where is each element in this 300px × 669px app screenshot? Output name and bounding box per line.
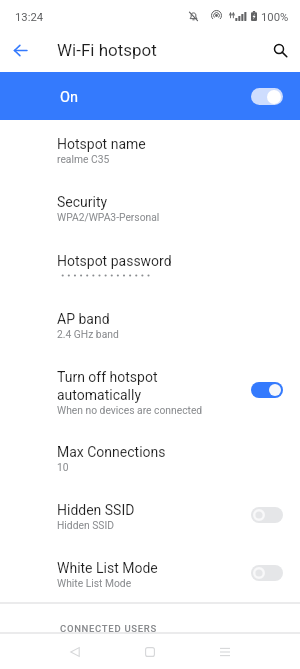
- button[interactable]: Back: [1, 31, 39, 69]
- staticText: 13:24: [15, 11, 44, 24]
- staticText: Hidden SSID: [57, 519, 114, 531]
- staticText: 10: [57, 461, 69, 473]
- button[interactable]: AP band: [0, 304, 300, 362]
- staticText: Hidden SSID: [57, 501, 135, 519]
- button[interactable]: Toggle off: [251, 565, 283, 581]
- staticText: Security: [57, 193, 108, 211]
- staticText: Wi-Fi hotspot: [57, 40, 157, 60]
- button[interactable]: Toggle off: [251, 507, 283, 523]
- staticText: Hotspot password: [57, 252, 172, 270]
- staticText: Turn off hotspot automatically: [57, 368, 158, 404]
- button[interactable]: Back: [42, 634, 108, 669]
- button[interactable]: On: [0, 72, 300, 120]
- staticText: 2.4 GHz band: [57, 328, 119, 340]
- button[interactable]: Search: [261, 31, 299, 69]
- staticText: 100%: [261, 11, 289, 24]
- staticText: When no devices are connected: [57, 404, 203, 416]
- staticText: CONNECTED USERS: [60, 623, 157, 634]
- button[interactable]: Home: [117, 634, 183, 669]
- button[interactable]: Recent apps: [192, 634, 258, 669]
- staticText: Hotspot name: [57, 135, 146, 153]
- button[interactable]: Security: [0, 187, 300, 245]
- button[interactable]: Hidden SSID: [0, 495, 300, 553]
- staticText: AP band: [57, 310, 110, 328]
- button[interactable]: Turn off hotspot automatically: [0, 362, 300, 437]
- staticText: White List Mode: [57, 577, 132, 589]
- button[interactable]: Toggle on: [251, 382, 283, 398]
- button[interactable]: Hotspot password: [0, 246, 300, 304]
- staticText: WPA2/WPA3-Personal: [57, 211, 160, 223]
- staticText: On: [60, 89, 78, 106]
- staticText: Max Connections: [57, 443, 166, 461]
- button[interactable]: White List Mode: [0, 553, 300, 611]
- staticText: White List Mode: [57, 559, 158, 577]
- staticText: realme C35: [57, 153, 110, 165]
- button[interactable]: Hotspot name: [0, 129, 300, 187]
- button[interactable]: Max Connections: [0, 437, 300, 495]
